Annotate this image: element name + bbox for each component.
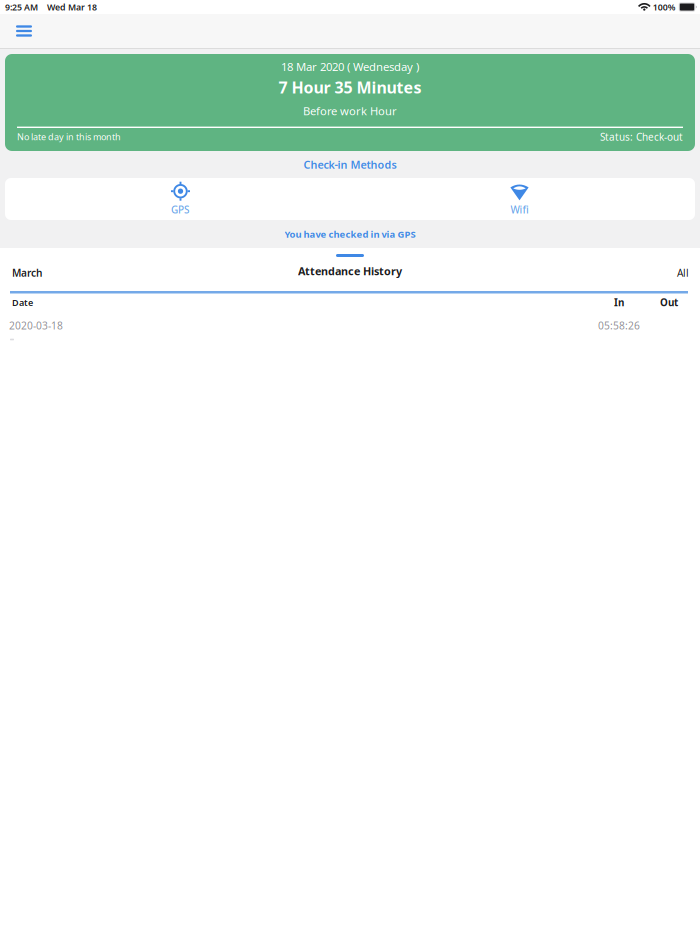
button[interactable]: 2020-03-18 (0, 317, 700, 345)
button[interactable]: Menu (0, 14, 46, 48)
button[interactable]: March (0, 262, 50, 280)
staticText: Status: Check-out (600, 130, 683, 144)
staticText: Before work Hour (303, 103, 397, 118)
button[interactable]: All (669, 262, 700, 280)
staticText: Wed Mar 18 (47, 1, 97, 13)
staticText: All (677, 266, 689, 280)
staticText: Date (12, 296, 33, 309)
staticText: Attendance History (298, 264, 402, 278)
staticText: You have checked in via GPS (284, 228, 415, 240)
staticText: Out (660, 296, 678, 309)
staticText: Wifi (510, 203, 528, 216)
staticText: 9:25 AM (5, 1, 38, 13)
button[interactable]: Wifi (350, 178, 689, 220)
staticText: No late day in this month (17, 131, 121, 143)
staticText: 05:58:26 (598, 318, 640, 332)
staticText: 2020-03-18 (9, 318, 63, 332)
staticText: 100% (653, 1, 676, 13)
staticText: In (614, 296, 624, 309)
staticText: 18 Mar 2020 ( Wednesday ) (281, 59, 419, 74)
button[interactable]: GPS (11, 178, 350, 220)
staticText: GPS (171, 203, 190, 216)
staticText: 7 Hour 35 Minutes (278, 76, 421, 98)
staticText: Check-in Methods (303, 157, 396, 172)
staticText: March (12, 266, 42, 280)
